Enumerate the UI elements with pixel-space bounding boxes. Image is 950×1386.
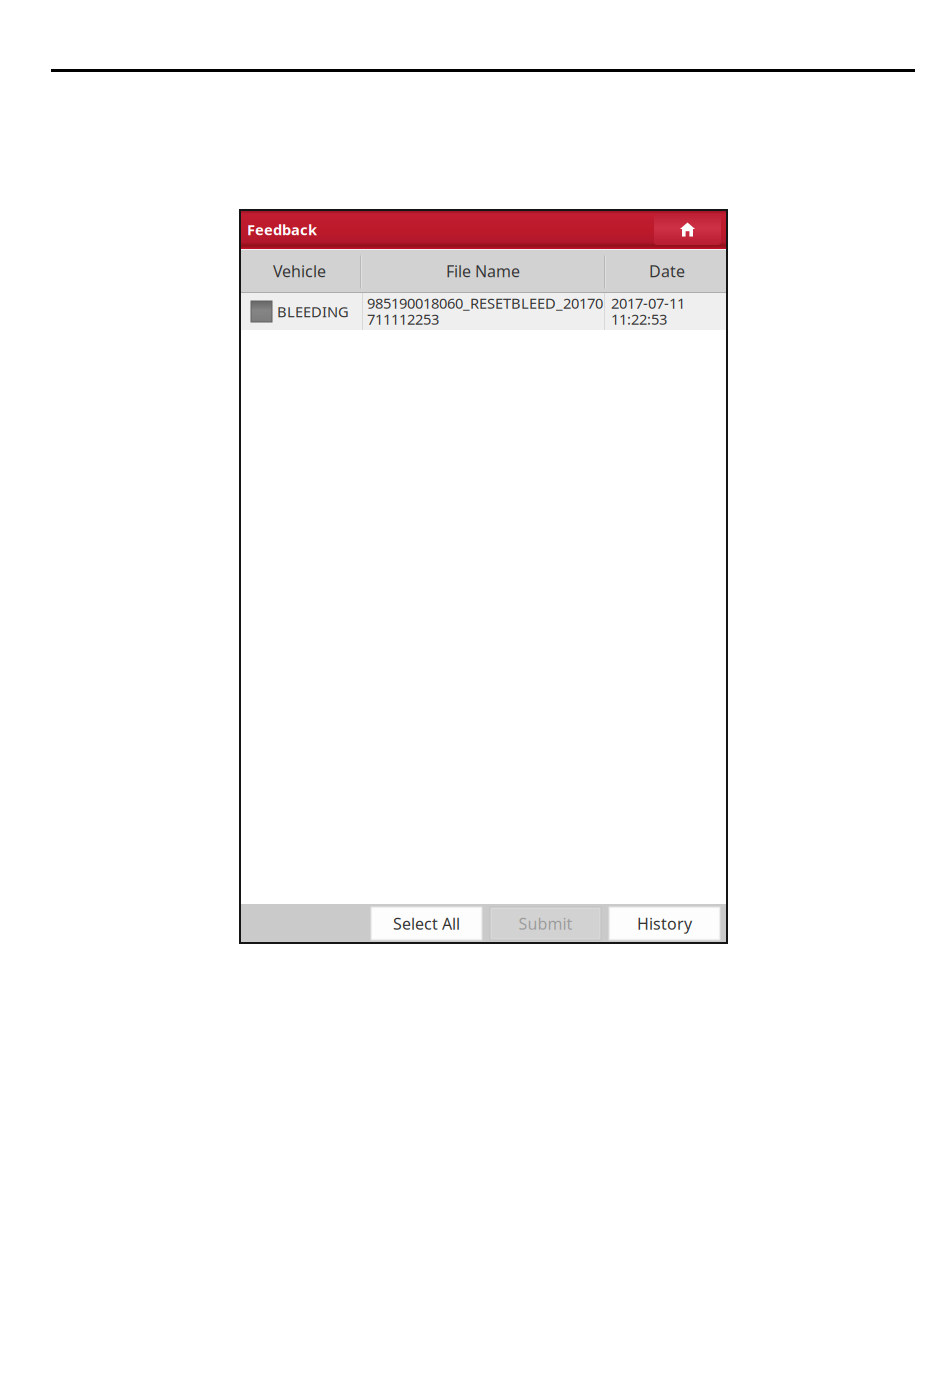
staticText: Select All [393,913,460,934]
staticText: 985190018060_RESETBLEED_20170 [367,293,603,313]
staticText: Vehicle [273,260,326,282]
staticText: 711112253 [367,309,439,329]
staticText: Submit [518,913,572,934]
staticText: 2017-07-11 [611,293,685,313]
button[interactable]: Home [654,214,721,245]
button[interactable]: History [609,907,720,940]
staticText: Feedback [247,220,317,239]
button[interactable]: Submit [490,907,601,940]
staticText: History [637,913,692,934]
button[interactable]: Select All [371,907,482,940]
staticText: File Name [446,260,520,282]
staticText: 11:22:53 [611,309,667,329]
navigationBar: Feedback [240,210,727,249]
staticText: BLEEDING [277,302,349,321]
button[interactable]: BLEEDING [241,293,726,330]
staticText: Date [649,260,685,282]
